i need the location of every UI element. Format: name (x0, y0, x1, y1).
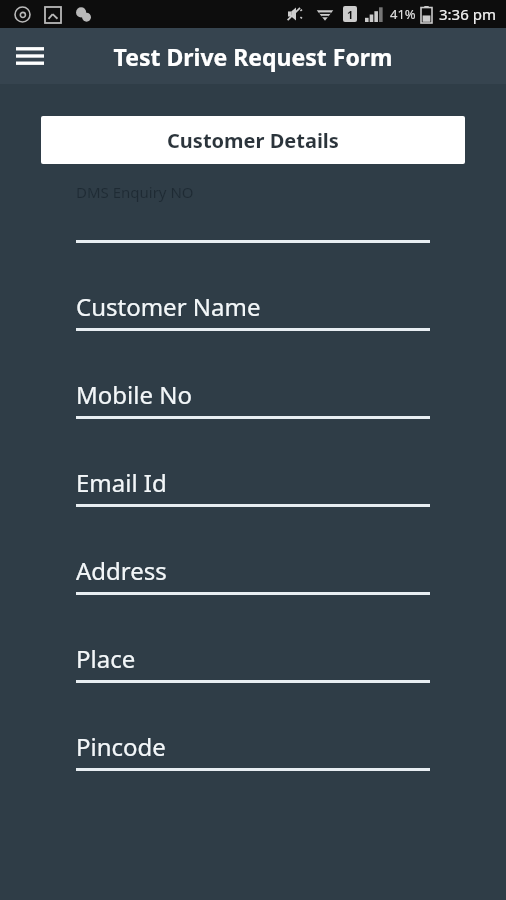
staticText: Customer Details (167, 127, 339, 154)
staticText: Address (76, 554, 167, 587)
staticText: Customer Name (76, 290, 261, 323)
button[interactable]: Place (76, 595, 430, 683)
staticText: Pincode (76, 730, 166, 763)
staticText: Email Id (76, 466, 167, 499)
button[interactable]: Customer Name (76, 243, 430, 331)
staticText: 41% (390, 5, 416, 23)
button[interactable]: Pincode (76, 683, 430, 771)
button[interactable]: Open navigation menu (6, 32, 54, 80)
staticText: Test Drive Request Form (0, 41, 506, 72)
button[interactable]: DMS Enquiry NO (76, 182, 430, 243)
button[interactable]: Mobile No (76, 331, 430, 419)
button[interactable]: Email Id (76, 419, 430, 507)
staticText: 1 (347, 7, 354, 22)
staticText: DMS Enquiry NO (76, 182, 194, 202)
staticText: 3:36 pm (439, 4, 496, 24)
staticText: Mobile No (76, 378, 192, 411)
staticText: Place (76, 642, 136, 675)
button[interactable]: Address (76, 507, 430, 595)
button[interactable]: Customer Details (41, 116, 465, 164)
